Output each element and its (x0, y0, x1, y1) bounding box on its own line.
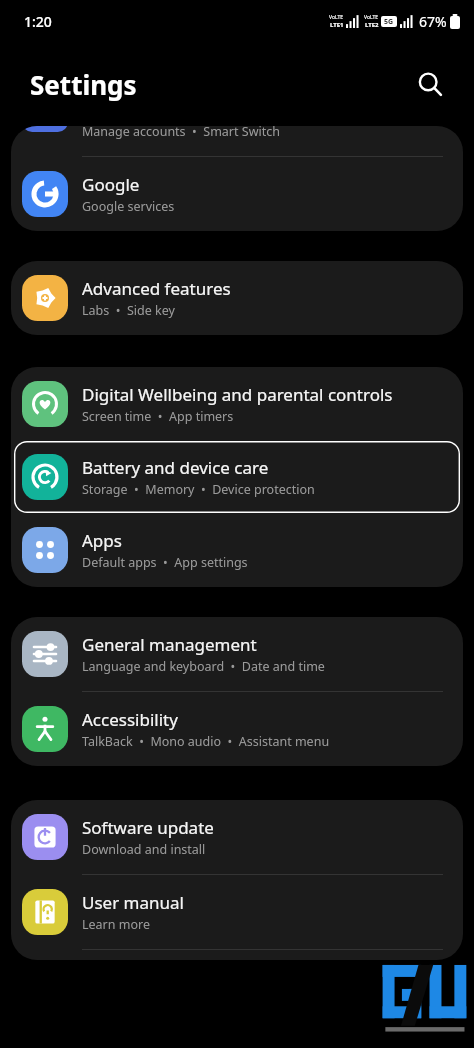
button[interactable]: Google (11, 157, 463, 231)
staticText: Google (82, 173, 140, 196)
button[interactable]: Software update (11, 800, 463, 874)
staticText: LTE2 (365, 21, 379, 29)
staticText: Download and install (82, 841, 206, 858)
staticText: Language and keyboard • Date and time (82, 658, 325, 675)
staticText: Screen time • App timers (82, 408, 234, 425)
staticText: VoLTE (329, 14, 344, 21)
staticText: LTE1 (330, 21, 344, 29)
staticText: 1:20 (24, 12, 52, 31)
staticText: Storage • Memory • Device protection (82, 481, 315, 498)
staticText: Software update (82, 816, 214, 839)
button[interactable]: Apps (11, 513, 463, 587)
staticText: User manual (82, 891, 184, 914)
button[interactable]: Digital Wellbeing and parental controls (11, 367, 463, 441)
staticText: 5G (384, 17, 394, 27)
staticText: Accessibility (82, 708, 178, 731)
staticText: Learn more (82, 916, 150, 933)
staticText: 67% (419, 12, 447, 31)
staticText: Google services (82, 198, 175, 215)
button[interactable]: User manual (11, 875, 463, 949)
staticText: Settings (30, 67, 137, 102)
staticText: Apps (82, 529, 122, 552)
button[interactable]: General management (11, 617, 463, 691)
button[interactable]: Accessibility (11, 692, 463, 766)
staticText: General management (82, 633, 257, 656)
staticText: VoLTE (364, 14, 379, 21)
staticText: Manage accounts • Smart Switch (82, 126, 280, 140)
staticText: TalkBack • Mono audio • Assistant menu (82, 733, 330, 750)
button[interactable]: Search (410, 64, 450, 104)
staticText: Labs • Side key (82, 302, 175, 319)
staticText: Battery and device care (82, 456, 269, 479)
button[interactable]: Advanced features (11, 261, 463, 335)
staticText: Advanced features (82, 277, 231, 300)
staticText: Digital Wellbeing and parental controls (82, 383, 393, 406)
button[interactable]: Battery and device care (14, 441, 460, 513)
staticText: Default apps • App settings (82, 554, 248, 571)
button[interactable]: Manage accounts • Smart Switch (11, 126, 463, 156)
